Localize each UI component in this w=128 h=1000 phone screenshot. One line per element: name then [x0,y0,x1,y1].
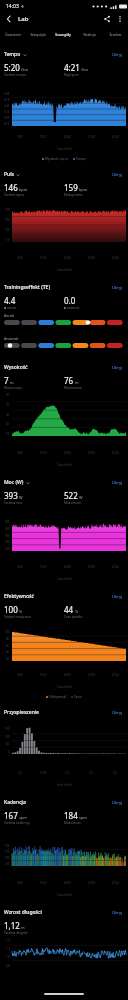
staticText: Ukryj [112,365,123,371]
staticText: 130 [5,862,10,866]
staticText: 550 [5,520,10,524]
staticText: Ukryj [112,710,123,716]
staticText: 41:24 [112,673,119,677]
staticText: spm [19,815,27,820]
staticText: Średnie [109,32,122,37]
staticText: 450 [5,527,10,531]
staticText: Średnia długość [4,931,28,935]
staticText: 10:21 [40,565,47,569]
staticText: 350 [5,534,10,538]
staticText: 41:24 [112,256,119,260]
staticText: 146 [4,182,18,193]
staticText: 90 [6,393,10,397]
staticText: 110 [5,238,10,242]
staticText: Średnia kadencja [4,821,30,825]
staticText: Moc (W) [4,479,24,486]
staticText: 170 [5,208,10,212]
staticText: Średnie tętno [4,193,25,197]
staticText: % [75,609,79,614]
staticText: 1,0 [6,955,10,959]
button[interactable]: Średnie [102,26,128,42]
button[interactable]: Back [2,12,16,26]
staticText: 5:15 [4,110,10,114]
staticText: 522 [64,490,78,501]
button[interactable]: Ukryj [111,284,124,292]
staticText: 41:24 [112,135,119,139]
staticText: 20:42 [64,135,71,139]
button[interactable]: Ukryj [111,171,124,179]
staticText: 31:03 [88,451,95,455]
staticText: 50 [6,742,10,746]
button[interactable]: Ukryj [111,593,124,601]
button[interactable]: Statystyki [25,26,50,42]
staticText: 41:24 [112,565,119,569]
staticText: 1,2 [6,947,10,951]
staticText: Czas (min) [57,893,72,897]
staticText: Kadencja [4,799,26,806]
staticText: 4:45 [4,104,10,108]
staticText: 4.4 [4,295,16,306]
button[interactable]: Ukryj [111,479,124,487]
staticText: 7 [4,375,9,386]
staticText: Tempo [76,157,86,161]
staticText: 10:21 [40,135,47,139]
staticText: Statystyki [30,32,46,37]
staticText: 20:42 [64,673,71,677]
staticText: 20:42 [64,565,71,569]
staticText: Średnia moc [4,501,23,505]
staticText: 76 [64,375,74,386]
staticText: 170 [5,850,10,854]
staticText: 0.0 [64,295,76,306]
button[interactable]: Ukryj [111,364,124,372]
staticText: Reakcja [83,32,96,37]
staticText: Maksimum [64,821,81,825]
button[interactable]: Ćwiczenie [0,26,25,42]
button[interactable]: Share [100,12,114,26]
staticText: 0:00 [17,673,23,677]
staticText: % [19,609,23,614]
staticText: 250 [5,540,10,544]
staticText: 10:21 [40,451,47,455]
button[interactable]: Ukryj [111,799,124,807]
staticText: Maksymalne [64,193,83,197]
staticText: 4:15 [4,98,10,102]
staticText: Maksimum [64,501,81,505]
staticText: spm [79,815,87,820]
staticText: Stopień nasycenia [4,615,32,619]
button[interactable]: Szczegóły [50,26,76,42]
staticText: Tętno [74,695,82,699]
button[interactable]: Reakcja [76,26,102,42]
staticText: Wysokość [4,364,28,371]
staticText: 31:03 [88,256,95,260]
button[interactable]: Ukryj [111,51,124,59]
staticText: m/s² (min) [57,783,72,787]
staticText: 70 [6,403,10,407]
button[interactable]: More options [114,13,126,25]
staticText: bpm [79,187,88,192]
staticText: 10:21 [40,881,47,885]
staticText: Ćwiczenie [5,32,21,37]
staticText: 20:42 [64,256,71,260]
staticText: 14:03 [6,3,19,10]
staticText: 30 [6,422,10,426]
staticText: 0 [8,750,10,754]
button[interactable]: Ukryj [111,909,124,917]
staticText: /km [81,67,88,72]
staticText: Ukryj [112,52,123,58]
staticText: 150 [5,218,10,222]
staticText: Efektywność [4,593,34,600]
staticText: 1,4 [6,938,10,942]
staticText: Ukryj [112,594,123,600]
staticText: 50 [6,413,10,417]
staticText: Czas (min) [57,463,72,467]
staticText: 0:00 [17,565,23,569]
staticText: 44 [64,604,74,615]
staticText: /km [21,67,28,72]
staticText: 41:24 [112,881,119,885]
staticText: 31:03 [88,135,95,139]
staticText: 0:00 [17,881,23,885]
button[interactable]: Ukryj [111,709,124,717]
staticText: 4:21 [64,62,80,73]
staticText: 20 [6,657,10,661]
staticText: 167 [4,810,18,821]
